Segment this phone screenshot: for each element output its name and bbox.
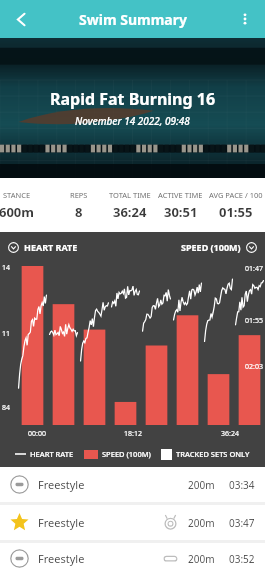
staticText: 36:24 bbox=[113, 203, 147, 221]
staticText: ACTIVE TIME bbox=[158, 190, 203, 200]
staticText: 8 bbox=[75, 203, 83, 221]
button[interactable]: Best lap bbox=[0, 505, 265, 540]
staticText: Freestyle bbox=[38, 551, 85, 566]
other: Pool length bbox=[10, 475, 29, 494]
staticText: 02:03 bbox=[245, 362, 263, 372]
button[interactable]: Pool length bbox=[0, 467, 265, 502]
staticText: 01:47 bbox=[245, 264, 263, 274]
other: Best lap bbox=[10, 513, 29, 532]
button[interactable]: SPEED (100M) bbox=[181, 241, 257, 253]
staticText: STANCE bbox=[3, 190, 31, 200]
staticText: SPEED (100M) bbox=[102, 449, 151, 459]
staticText: HEART RATE bbox=[30, 449, 74, 459]
staticText: 200m bbox=[188, 516, 215, 530]
staticText: 03:47 bbox=[229, 516, 255, 530]
staticText: 600m bbox=[0, 203, 34, 221]
staticText: 200m bbox=[188, 478, 215, 492]
staticText: Swim Summary bbox=[79, 10, 187, 29]
other: Achievement bbox=[163, 515, 178, 530]
button[interactable]: Back bbox=[6, 4, 36, 34]
other: Equipment bbox=[163, 551, 178, 566]
staticText: SPEED (100M) bbox=[181, 241, 241, 253]
staticText: TOTAL TIME bbox=[109, 190, 151, 200]
other: Pool length bbox=[10, 549, 29, 568]
staticText: 03:52 bbox=[229, 552, 255, 566]
staticText: 18:12 bbox=[124, 429, 142, 439]
staticText: 01:55 bbox=[219, 203, 253, 221]
button[interactable]: Pool length bbox=[0, 543, 265, 574]
staticText: HEART RATE bbox=[24, 241, 78, 253]
staticText: Freestyle bbox=[38, 515, 85, 530]
staticText: 84 bbox=[2, 403, 11, 413]
staticText: TRACKED SETS ONLY bbox=[176, 449, 250, 459]
staticText: 00:00 bbox=[28, 429, 46, 439]
button[interactable]: More options bbox=[230, 4, 260, 34]
staticText: REPS bbox=[70, 190, 88, 200]
staticText: 03:34 bbox=[229, 478, 255, 492]
staticText: 200m bbox=[188, 552, 215, 566]
staticText: 01:55 bbox=[245, 316, 263, 326]
staticText: Rapid Fat Burning 16 bbox=[50, 88, 216, 110]
button[interactable]: HEART RATE bbox=[8, 241, 78, 253]
staticText: 14 bbox=[2, 263, 11, 273]
staticText: Freestyle bbox=[38, 477, 85, 492]
staticText: 30:51 bbox=[164, 203, 198, 221]
staticText: AVG PACE / 100 bbox=[209, 190, 263, 200]
staticText: 36:24 bbox=[221, 429, 239, 439]
staticText: 11 bbox=[2, 329, 11, 339]
staticText: November 14 2022, 09:48 bbox=[75, 114, 190, 128]
